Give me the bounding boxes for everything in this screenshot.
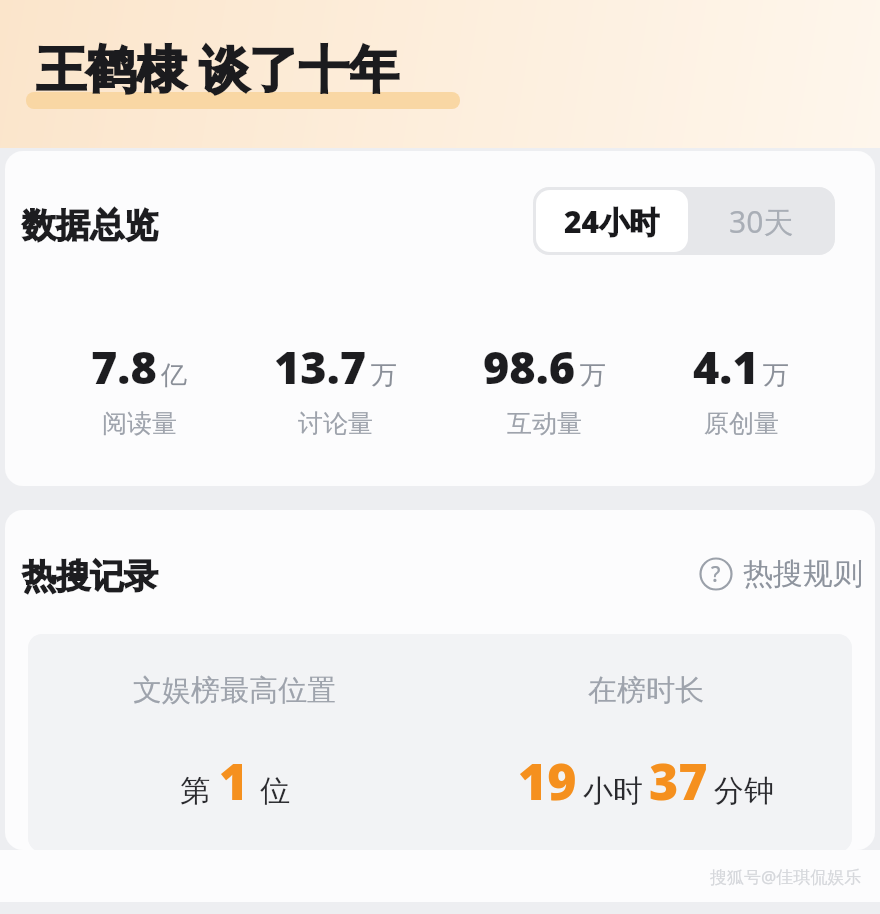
- staticText: 讨论量: [298, 408, 373, 439]
- staticText: 24小时: [564, 201, 660, 242]
- staticText: 文娱榜最高位置: [133, 672, 336, 709]
- staticText: 亿: [161, 359, 187, 392]
- staticText: 王鹤棣 谈了十年: [36, 34, 399, 102]
- staticText: 万: [763, 359, 789, 392]
- staticText: 在榜时长: [588, 672, 704, 709]
- staticText: 7.8: [91, 336, 157, 397]
- staticText: 位: [260, 772, 290, 810]
- staticText: 搜狐号@佳琪侃娱乐: [710, 865, 862, 888]
- staticText: 1: [219, 747, 249, 815]
- staticText: 数据总览: [22, 204, 158, 247]
- staticText: 阅读量: [102, 408, 177, 439]
- staticText: 分钟: [714, 772, 774, 810]
- staticText: 19: [518, 747, 577, 815]
- other: 热搜规则说明: [699, 557, 733, 591]
- staticText: 万: [371, 359, 397, 392]
- staticText: 热搜记录: [22, 555, 158, 598]
- staticText: 13.7: [274, 336, 367, 397]
- staticText: 万: [580, 359, 606, 392]
- staticText: 互动量: [507, 408, 582, 439]
- staticText: 小时: [583, 772, 643, 810]
- button[interactable]: 30天: [687, 187, 835, 255]
- staticText: ?: [711, 560, 721, 589]
- staticText: 30天: [729, 201, 794, 242]
- staticText: 98.6: [483, 336, 576, 397]
- staticText: 原创量: [704, 408, 779, 439]
- staticText: 4.1: [693, 336, 759, 397]
- staticText: 第: [180, 772, 210, 810]
- staticText: 37: [649, 747, 708, 815]
- staticText: 热搜规则: [743, 555, 863, 593]
- button[interactable]: 热搜规则说明: [699, 555, 863, 593]
- button[interactable]: 24小时: [536, 190, 688, 252]
